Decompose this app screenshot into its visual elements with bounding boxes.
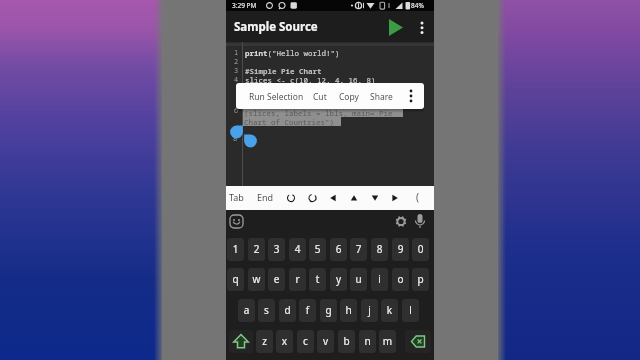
button[interactable]: r [289,268,306,291]
staticText: x [276,334,293,352]
button[interactable]: z [256,330,273,353]
staticText: 1 [227,242,244,260]
staticText: 4 [234,75,239,85]
button[interactable] [413,213,427,230]
button[interactable]: l [402,299,419,322]
staticText: g [320,303,337,321]
button[interactable] [368,186,382,210]
staticText: z [256,334,273,352]
button[interactable]: h [340,299,357,322]
staticText: n [359,334,376,352]
button[interactable]: End [257,186,277,210]
staticText: 0 [412,242,429,260]
button[interactable]: j [361,299,378,322]
staticText: t [309,272,326,290]
button[interactable]: 4 [289,238,306,261]
staticText: m [379,334,396,352]
button[interactable] [384,15,408,39]
button[interactable]: o [392,268,409,291]
staticText: Cut [313,91,327,103]
button[interactable]: 7 [350,238,367,261]
button[interactable] [394,213,409,230]
button[interactable]: Tab [228,186,246,210]
staticText: h [340,303,357,321]
button[interactable]: i [371,268,388,291]
button[interactable]: x [276,330,293,353]
button[interactable]: 3 [268,238,285,261]
button[interactable]: 2 [248,238,265,261]
staticText: 2 [234,57,239,67]
button[interactable] [326,186,340,210]
button[interactable] [415,15,429,39]
staticText: Sample Source [234,19,318,35]
button[interactable]: d [279,299,296,322]
button[interactable] [285,192,297,204]
staticText: w [248,272,265,290]
staticText: c [297,334,314,352]
button[interactable] [388,186,402,210]
staticText: l [402,303,419,321]
button[interactable]: y [330,268,347,291]
button[interactable] [336,83,364,109]
button[interactable]: m [379,330,396,353]
staticText: slices <- c(10, 12, 4, 16, 8) [245,75,376,85]
button[interactable]: n [359,330,376,353]
button[interactable] [367,83,395,109]
staticText: 3:29 PM [232,1,257,10]
staticText: q [227,272,244,290]
staticText: print("Hello world!") [245,48,340,58]
button[interactable]: 5 [309,238,326,261]
button[interactable]: b [338,330,355,353]
button[interactable] [347,186,361,210]
button[interactable]: k [381,299,398,322]
staticText: Tab [229,191,244,203]
staticText: 5 [309,242,326,260]
button[interactable]: s [258,299,275,322]
button[interactable]: w [248,268,265,291]
button[interactable]: e [268,268,285,291]
button[interactable]: 6 [330,238,347,261]
button[interactable] [405,330,431,353]
button[interactable]: q [227,268,244,291]
button[interactable] [404,83,418,109]
button[interactable]: t [309,268,326,291]
button[interactable]: 9 [392,238,409,261]
button[interactable]: c [297,330,314,353]
button[interactable]: a [238,299,255,322]
staticText: ( [416,190,419,204]
button[interactable]: p [412,268,429,291]
button[interactable]: u [350,268,367,291]
staticText: d [279,303,296,321]
staticText: 6 [234,106,239,116]
button[interactable]: 0 [412,238,429,261]
button[interactable]: 8 [371,238,388,261]
button[interactable]: 1 [227,238,244,261]
staticText: 8 [371,242,388,260]
staticText: a [238,303,255,321]
button[interactable] [229,330,253,353]
staticText: #Simple Pie Chart [245,66,322,76]
staticText: v [317,334,334,352]
staticText: Chart of Countries") [244,117,334,127]
staticText: 1 [234,48,239,58]
staticText: f [299,303,316,321]
staticText: i [371,272,388,290]
staticText: 7 [350,242,367,260]
staticText: u [350,272,367,290]
button[interactable]: f [299,299,316,322]
button[interactable] [227,213,244,230]
staticText: j [361,303,378,321]
staticText: b [338,334,355,352]
staticText: y [330,272,347,290]
button[interactable]: ( [414,186,426,210]
button[interactable] [306,192,318,204]
staticText: k [381,303,398,321]
staticText: (slices, labels = lbls, main= Pie [244,108,393,118]
button[interactable] [248,83,304,109]
button[interactable] [310,83,332,109]
staticText: 3 [234,66,239,76]
button[interactable]: v [317,330,334,353]
staticText: r [289,272,306,290]
staticText: 6 [330,242,347,260]
button[interactable]: g [320,299,337,322]
